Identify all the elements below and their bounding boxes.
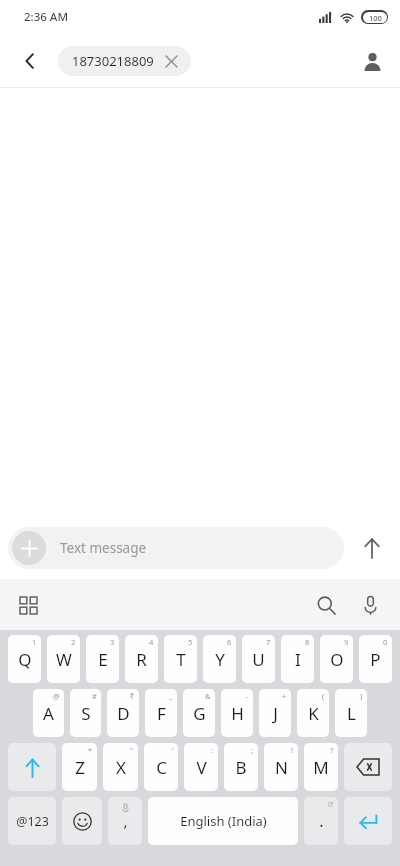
staticText: & (205, 691, 211, 701)
staticText: R (136, 648, 147, 671)
button[interactable]: Add attachment (8, 527, 344, 569)
staticText: O (330, 648, 344, 671)
button[interactable]: J (259, 689, 291, 737)
button[interactable]: Toolbar (8, 585, 48, 625)
staticText: P (370, 648, 381, 671)
staticText: @123 (16, 813, 49, 830)
staticText: F (157, 702, 166, 725)
staticText: M (313, 756, 329, 779)
button[interactable]: C (144, 743, 178, 791)
button[interactable]: V (184, 743, 218, 791)
button[interactable]: U (242, 635, 275, 683)
button[interactable]: Emoji (62, 797, 102, 845)
button[interactable]: L (335, 689, 367, 737)
button[interactable]: W (47, 635, 80, 683)
staticText: 18730218809 (72, 52, 154, 70)
button[interactable]: , (108, 797, 142, 845)
staticText: 8 (305, 637, 310, 647)
staticText: U (252, 648, 265, 671)
staticText: B (235, 756, 247, 779)
button[interactable]: A (33, 689, 64, 737)
staticText: @ (53, 691, 60, 701)
staticText: 2:36 AM (24, 9, 68, 25)
staticText: 2 (71, 637, 76, 647)
staticText: ' (172, 745, 174, 755)
staticText: 9 (344, 637, 349, 647)
button[interactable]: F (145, 689, 177, 737)
button[interactable]: H (221, 689, 253, 737)
staticText: 1 (32, 637, 37, 647)
staticText: K (308, 702, 319, 725)
button[interactable]: @123 (8, 797, 56, 845)
staticText: # (92, 691, 97, 701)
button[interactable]: English (India) (148, 797, 298, 845)
staticText: 7 (266, 637, 271, 647)
staticText: S (81, 702, 91, 725)
staticText: C (156, 756, 167, 779)
button[interactable]: 18730218809 (58, 46, 191, 76)
staticText: ; (251, 745, 254, 755)
staticText: - (246, 691, 249, 701)
button[interactable]: N (264, 743, 298, 791)
button[interactable]: G (183, 689, 215, 737)
staticText: ? (330, 745, 334, 755)
button[interactable]: R (125, 635, 158, 683)
button[interactable]: Send (344, 524, 400, 572)
staticText: I (295, 648, 301, 671)
staticText: . (319, 810, 324, 832)
staticText: " (130, 745, 134, 755)
staticText: 5 (188, 637, 193, 647)
button[interactable]: K (297, 689, 329, 737)
staticText: Text message (60, 539, 147, 557)
button[interactable]: I (281, 635, 314, 683)
button[interactable]: Y (203, 635, 236, 683)
staticText: W (56, 648, 72, 671)
staticText: 6 (227, 637, 232, 647)
staticText: D (117, 702, 130, 725)
staticText: A (43, 702, 54, 725)
button[interactable]: Enter (344, 797, 392, 845)
staticText: Q (18, 648, 32, 671)
staticText: ( (322, 691, 325, 701)
button[interactable]: Back (12, 43, 48, 79)
button[interactable]: Search (304, 583, 348, 627)
staticText: _ (169, 691, 173, 701)
staticText: 3 (110, 637, 115, 647)
staticText: * (88, 745, 93, 755)
staticText: T (176, 648, 186, 671)
button[interactable]: . (304, 797, 338, 845)
button[interactable]: B (224, 743, 258, 791)
button[interactable]: T (164, 635, 197, 683)
button[interactable]: M (304, 743, 338, 791)
staticText: + (282, 691, 287, 701)
button[interactable]: D (107, 689, 139, 737)
staticText: ₹ (130, 691, 135, 701)
button[interactable]: O (320, 635, 353, 683)
button[interactable]: Shift (8, 743, 56, 791)
staticText: J (273, 702, 278, 725)
staticText: 0 (383, 637, 388, 647)
staticText: !? (328, 799, 334, 809)
staticText: Z (75, 756, 85, 779)
staticText: H (231, 702, 244, 725)
button[interactable]: Contact (352, 41, 392, 81)
staticText: G (193, 702, 206, 725)
button[interactable]: S (70, 689, 101, 737)
staticText: V (196, 756, 207, 779)
button[interactable]: Add attachment (12, 531, 46, 565)
staticText: English (India) (180, 812, 267, 830)
button[interactable]: Voice input (348, 583, 392, 627)
button[interactable]: Q (8, 635, 41, 683)
button[interactable]: Backspace (344, 743, 392, 791)
button[interactable]: X (103, 743, 138, 791)
button[interactable]: Z (62, 743, 97, 791)
staticText: 100 (369, 13, 382, 23)
staticText: : (211, 745, 214, 755)
staticText: ! (291, 745, 294, 755)
button[interactable]: E (86, 635, 119, 683)
staticText: E (98, 648, 108, 671)
staticText: , (123, 811, 128, 831)
button[interactable]: P (359, 635, 392, 683)
staticText: X (116, 756, 126, 779)
staticText: N (275, 756, 288, 779)
